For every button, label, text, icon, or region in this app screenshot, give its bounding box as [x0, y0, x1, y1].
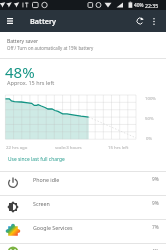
- staticText: 48%: [5, 62, 35, 82]
- staticText: Approx. 15 hrs left: [7, 79, 55, 86]
- button[interactable]: More options: [147, 14, 161, 28]
- staticText: Google Services: [33, 224, 73, 231]
- staticText: 9%: [152, 200, 159, 207]
- button[interactable]: Use since last full charge: [0, 153, 65, 166]
- staticText: Screen: [33, 200, 50, 207]
- button[interactable]: Screen: [0, 196, 166, 219]
- button[interactable]: Battery saver: [0, 33, 166, 58]
- staticText: 0%: [146, 135, 153, 141]
- button[interactable]: Phone idle: [0, 172, 166, 195]
- staticText: Off / Turn on automatically at 15% batte…: [7, 45, 94, 51]
- staticText: Phone idle: [33, 176, 60, 183]
- staticText: 50%: [145, 115, 154, 121]
- staticText: scale:3 hours: [55, 144, 82, 150]
- staticText: 15 hrs left: [108, 144, 129, 150]
- staticText: 22:35: [145, 2, 159, 9]
- staticText: 9%: [152, 176, 159, 183]
- staticText: Battery: [30, 16, 56, 26]
- button[interactable]: Android System: [0, 244, 166, 250]
- button[interactable]: Open navigation drawer: [0, 11, 20, 31]
- staticText: Battery saver: [7, 38, 39, 45]
- button[interactable]: Google Services: [0, 220, 166, 243]
- staticText: 100%: [145, 95, 156, 101]
- button[interactable]: Refresh: [130, 11, 150, 31]
- staticText: 22 hrs ago: [6, 144, 28, 150]
- staticText: 7%: [152, 224, 159, 231]
- staticText: 40%: [134, 2, 144, 9]
- staticText: 4%: [152, 248, 159, 250]
